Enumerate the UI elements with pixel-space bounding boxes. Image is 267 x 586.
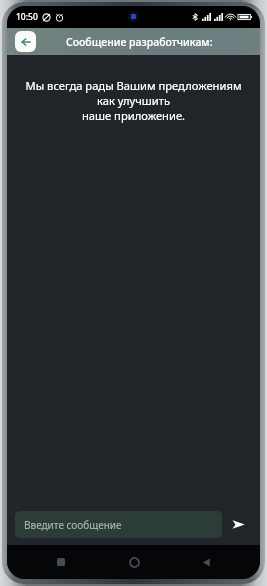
button[interactable]: Введите сообщение [15,511,222,538]
staticText: Мы всегда рады Вашим предложениям как ул… [11,78,256,123]
button[interactable]: Back [188,545,224,579]
button[interactable]: Home [116,545,152,579]
staticText: 10:50 [16,11,38,23]
staticText: Сообщение разработчикам: [66,35,213,49]
staticText: Введите сообщение [24,518,122,532]
button[interactable]: Send [222,511,254,538]
button[interactable]: Recents [43,545,79,579]
button[interactable]: Back [15,31,36,52]
